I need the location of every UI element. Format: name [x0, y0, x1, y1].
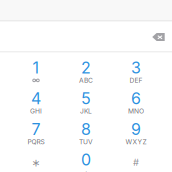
staticText: DEF	[129, 76, 142, 84]
button[interactable]: ∗	[11, 145, 61, 172]
staticText: WXYZ	[125, 138, 146, 146]
staticText: 2	[81, 58, 91, 77]
button[interactable]: 5	[61, 84, 111, 114]
button[interactable]: 8	[61, 114, 111, 145]
button[interactable]: 3	[111, 53, 161, 84]
staticText: JKL	[80, 107, 92, 115]
button[interactable]: Delete	[145, 25, 172, 49]
staticText: 0	[81, 150, 91, 169]
button[interactable]: 2	[61, 53, 111, 84]
button[interactable]: 7	[11, 114, 61, 145]
staticText: ∗	[31, 157, 40, 169]
staticText: 4	[31, 89, 41, 108]
button[interactable]: 0	[61, 145, 111, 172]
button[interactable]: 9	[111, 114, 161, 145]
button[interactable]: 1	[11, 53, 61, 84]
button[interactable]: 6	[111, 84, 161, 114]
staticText: 8	[81, 119, 91, 139]
staticText: 6	[131, 89, 141, 108]
staticText: TUV	[79, 138, 93, 146]
staticText: #	[133, 157, 139, 168]
staticText: +	[84, 168, 88, 172]
staticText: MNO	[128, 107, 144, 115]
button[interactable]: #	[111, 145, 161, 172]
staticText: 1	[32, 58, 39, 77]
staticText: ABC	[79, 76, 93, 84]
staticText: PQRS	[27, 138, 44, 146]
staticText: 9	[131, 119, 141, 139]
staticText: GHI	[30, 107, 42, 115]
staticText: 5	[81, 89, 91, 108]
button[interactable]: 4	[11, 84, 61, 114]
staticText: 3	[131, 58, 141, 77]
staticText: 7	[31, 119, 40, 139]
